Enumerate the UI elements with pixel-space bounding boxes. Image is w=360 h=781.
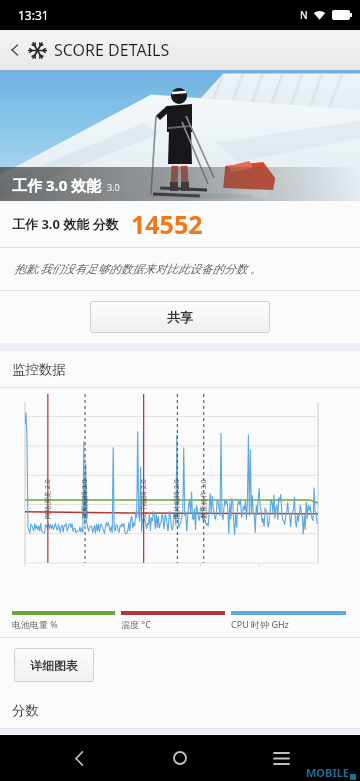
button[interactable]: Back — [57, 736, 101, 780]
staticText: 抱歉,我们没有足够的数据来对比此设备的分数 。 — [14, 261, 262, 277]
button[interactable]: 共享 — [90, 301, 270, 333]
staticText: 网络浏览 2.0 — [43, 479, 53, 519]
staticText: SCORE DETAILS — [54, 39, 170, 61]
staticText: 数据操作 3.0 — [199, 479, 209, 519]
staticText: 3.0 — [107, 181, 120, 193]
staticText: 监控数据 — [12, 361, 66, 378]
staticText: N — [300, 8, 308, 22]
staticText: MOBILE — [306, 765, 349, 780]
staticText: 分数 — [12, 702, 39, 719]
staticText: 温度 °C — [121, 618, 151, 630]
staticText: 电池电量 % — [12, 618, 58, 630]
staticText: 共享 — [167, 309, 193, 325]
staticText: 13:31 — [18, 7, 49, 23]
staticText: 14552 — [131, 207, 203, 241]
staticText: 详细图表 — [30, 658, 78, 673]
staticText: 视频编辑 2.0 — [80, 479, 90, 519]
staticText: 工作 3.0 效能 分数 — [12, 215, 119, 233]
staticText: 文书编辑 2.0 — [139, 479, 149, 519]
button[interactable]: Recent apps — [259, 736, 303, 780]
staticText: CPU 时钟 GHz — [231, 618, 289, 630]
button[interactable]: Home — [158, 736, 202, 780]
button[interactable]: 详细图表 — [14, 648, 94, 682]
staticText: 工作 3.0 效能 — [12, 175, 102, 195]
staticText: 图片编辑 2.0 — [172, 479, 182, 519]
button[interactable]: Back — [2, 37, 28, 63]
